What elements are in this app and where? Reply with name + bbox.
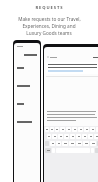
button[interactable] [56,141,61,146]
button[interactable] [14,46,40,47]
button[interactable]: Back [43,44,98,182]
button[interactable] [70,134,75,139]
button[interactable] [50,141,55,146]
button[interactable] [76,134,81,139]
button[interactable] [78,127,83,132]
staticText: Luxury Goods teams [26,30,72,36]
button[interactable] [14,119,40,124]
button[interactable] [45,127,49,132]
staticText: Experiences, Dining and [22,23,76,29]
button[interactable] [46,62,98,74]
button[interactable] [13,40,41,182]
button[interactable] [88,134,93,139]
button[interactable] [14,83,40,88]
button[interactable] [50,127,54,132]
button[interactable]: Symbols [45,148,51,153]
button[interactable] [94,134,98,139]
staticText: REQUESTS [35,5,64,11]
button[interactable] [76,141,82,146]
button[interactable] [64,134,69,139]
button[interactable] [62,141,68,146]
button[interactable] [90,127,95,132]
button[interactable] [58,134,63,139]
button[interactable] [14,101,40,106]
button[interactable] [14,65,40,70]
button[interactable] [82,134,87,139]
button[interactable] [72,127,77,132]
button[interactable] [90,141,96,146]
button[interactable] [55,127,59,132]
button[interactable] [69,141,75,146]
button[interactable] [66,127,71,132]
button[interactable] [83,141,89,146]
staticText: Make requests to our Travel, [18,16,81,22]
button[interactable] [52,134,57,139]
button[interactable] [84,127,89,132]
button[interactable] [47,134,51,139]
button[interactable] [60,127,65,132]
button[interactable]: Back [47,56,57,58]
